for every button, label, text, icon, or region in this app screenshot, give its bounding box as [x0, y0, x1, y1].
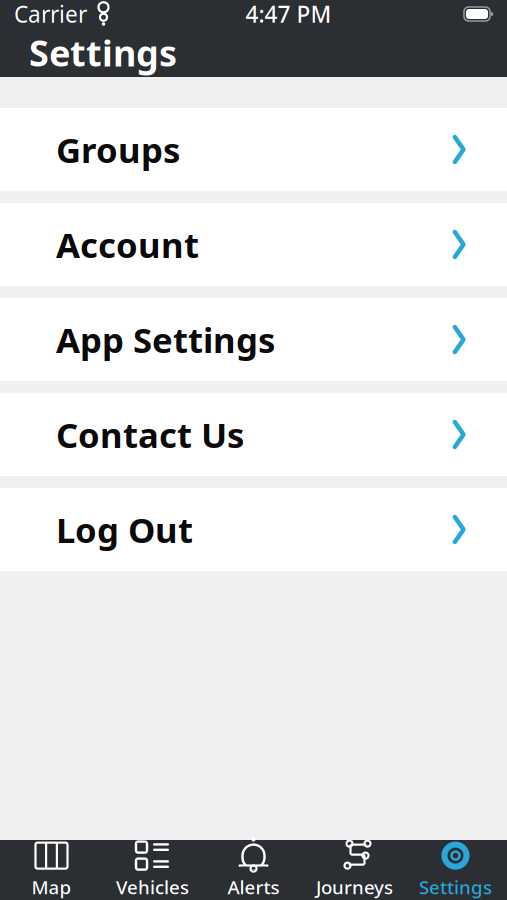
button[interactable]: Journeys	[304, 840, 405, 900]
staticText: Groups	[56, 126, 180, 172]
staticText: Carrier	[14, 0, 87, 29]
staticText: Account	[56, 221, 199, 267]
button[interactable]: App Settings	[0, 298, 507, 381]
staticText: Vehicles	[116, 875, 189, 899]
staticText: 4:47 PM	[245, 0, 331, 29]
button[interactable]: Vehicles	[102, 840, 203, 900]
staticText: Log Out	[56, 506, 193, 552]
button[interactable]: Log Out	[0, 488, 507, 571]
button[interactable]: Settings	[405, 840, 506, 900]
staticText: Map	[31, 875, 71, 899]
staticText: Journeys	[316, 875, 393, 899]
button[interactable]: Map	[1, 840, 102, 900]
staticText: App Settings	[56, 316, 275, 362]
staticText: Alerts	[227, 875, 279, 899]
staticText: Contact Us	[56, 411, 244, 457]
button[interactable]: Alerts	[203, 840, 304, 900]
staticText: Settings	[419, 875, 492, 899]
button[interactable]: Contact Us	[0, 393, 507, 476]
button[interactable]: Groups	[0, 108, 507, 191]
button[interactable]: Account	[0, 203, 507, 286]
staticText: Settings	[29, 29, 177, 76]
